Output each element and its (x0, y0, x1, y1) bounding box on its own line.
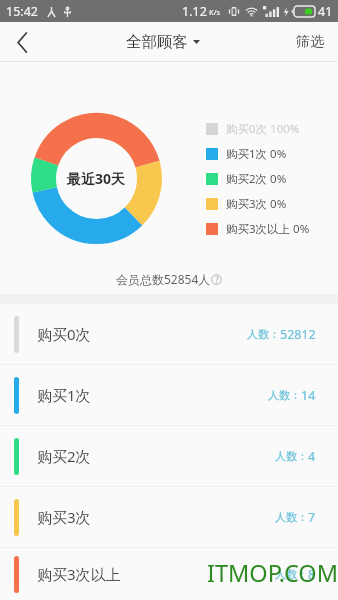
button[interactable]: 购买0次 (0, 304, 338, 365)
staticText: 8 (308, 566, 316, 583)
button[interactable]: 购买3次 0% (206, 191, 287, 216)
staticText: 购买3次 (37, 507, 91, 527)
staticText: K/s (209, 7, 221, 17)
button[interactable]: 购买1次 (0, 365, 338, 426)
staticText: 14 (301, 387, 316, 404)
staticText: 购买3次以上 0% (226, 221, 310, 237)
staticText: 15:42 (6, 3, 38, 20)
staticText: 购买0次 (37, 324, 91, 344)
staticText: 52812 (280, 326, 316, 343)
staticText: 1.12 (182, 3, 207, 20)
staticText: 41 (318, 3, 333, 20)
staticText: 购买2次 0% (226, 171, 287, 187)
button[interactable]: 全部顾客 (126, 32, 200, 52)
staticText: 购买3次以上 (37, 564, 121, 584)
staticText: 人数： (247, 327, 280, 341)
staticText: 人数： (268, 388, 301, 402)
staticText: 购买0次 100% (226, 121, 300, 137)
button[interactable]: 购买2次 0% (206, 166, 287, 191)
staticText: ITMOP.COM (207, 557, 338, 589)
button[interactable]: 购买3次以上 (0, 548, 338, 600)
staticText: 人数： (275, 510, 308, 524)
staticText: 购买1次 0% (226, 146, 287, 162)
staticText: 人数： (275, 567, 308, 581)
button[interactable]: Back (0, 22, 44, 62)
button[interactable]: 购买2次 (0, 426, 338, 487)
staticText: 最近30天 (67, 169, 126, 188)
button[interactable]: 购买3次 (0, 487, 338, 548)
staticText: 购买3次 0% (226, 196, 287, 212)
staticText: 筛选 (296, 33, 324, 51)
staticText: 购买2次 (37, 446, 91, 466)
button[interactable]: 筛选 (296, 33, 324, 51)
staticText: ? (215, 274, 219, 285)
button[interactable]: 购买1次 0% (206, 141, 287, 166)
staticText: 购买1次 (37, 385, 91, 405)
staticText: 7 (308, 509, 316, 526)
staticText: 全部顾客 (126, 32, 188, 52)
button[interactable]: 购买3次以上 0% (206, 216, 310, 241)
staticText: 会员总数52854人 (116, 271, 211, 287)
staticText: 4 (308, 448, 316, 465)
button[interactable]: 购买0次 100% (206, 116, 300, 141)
staticText: 人数： (275, 449, 308, 463)
